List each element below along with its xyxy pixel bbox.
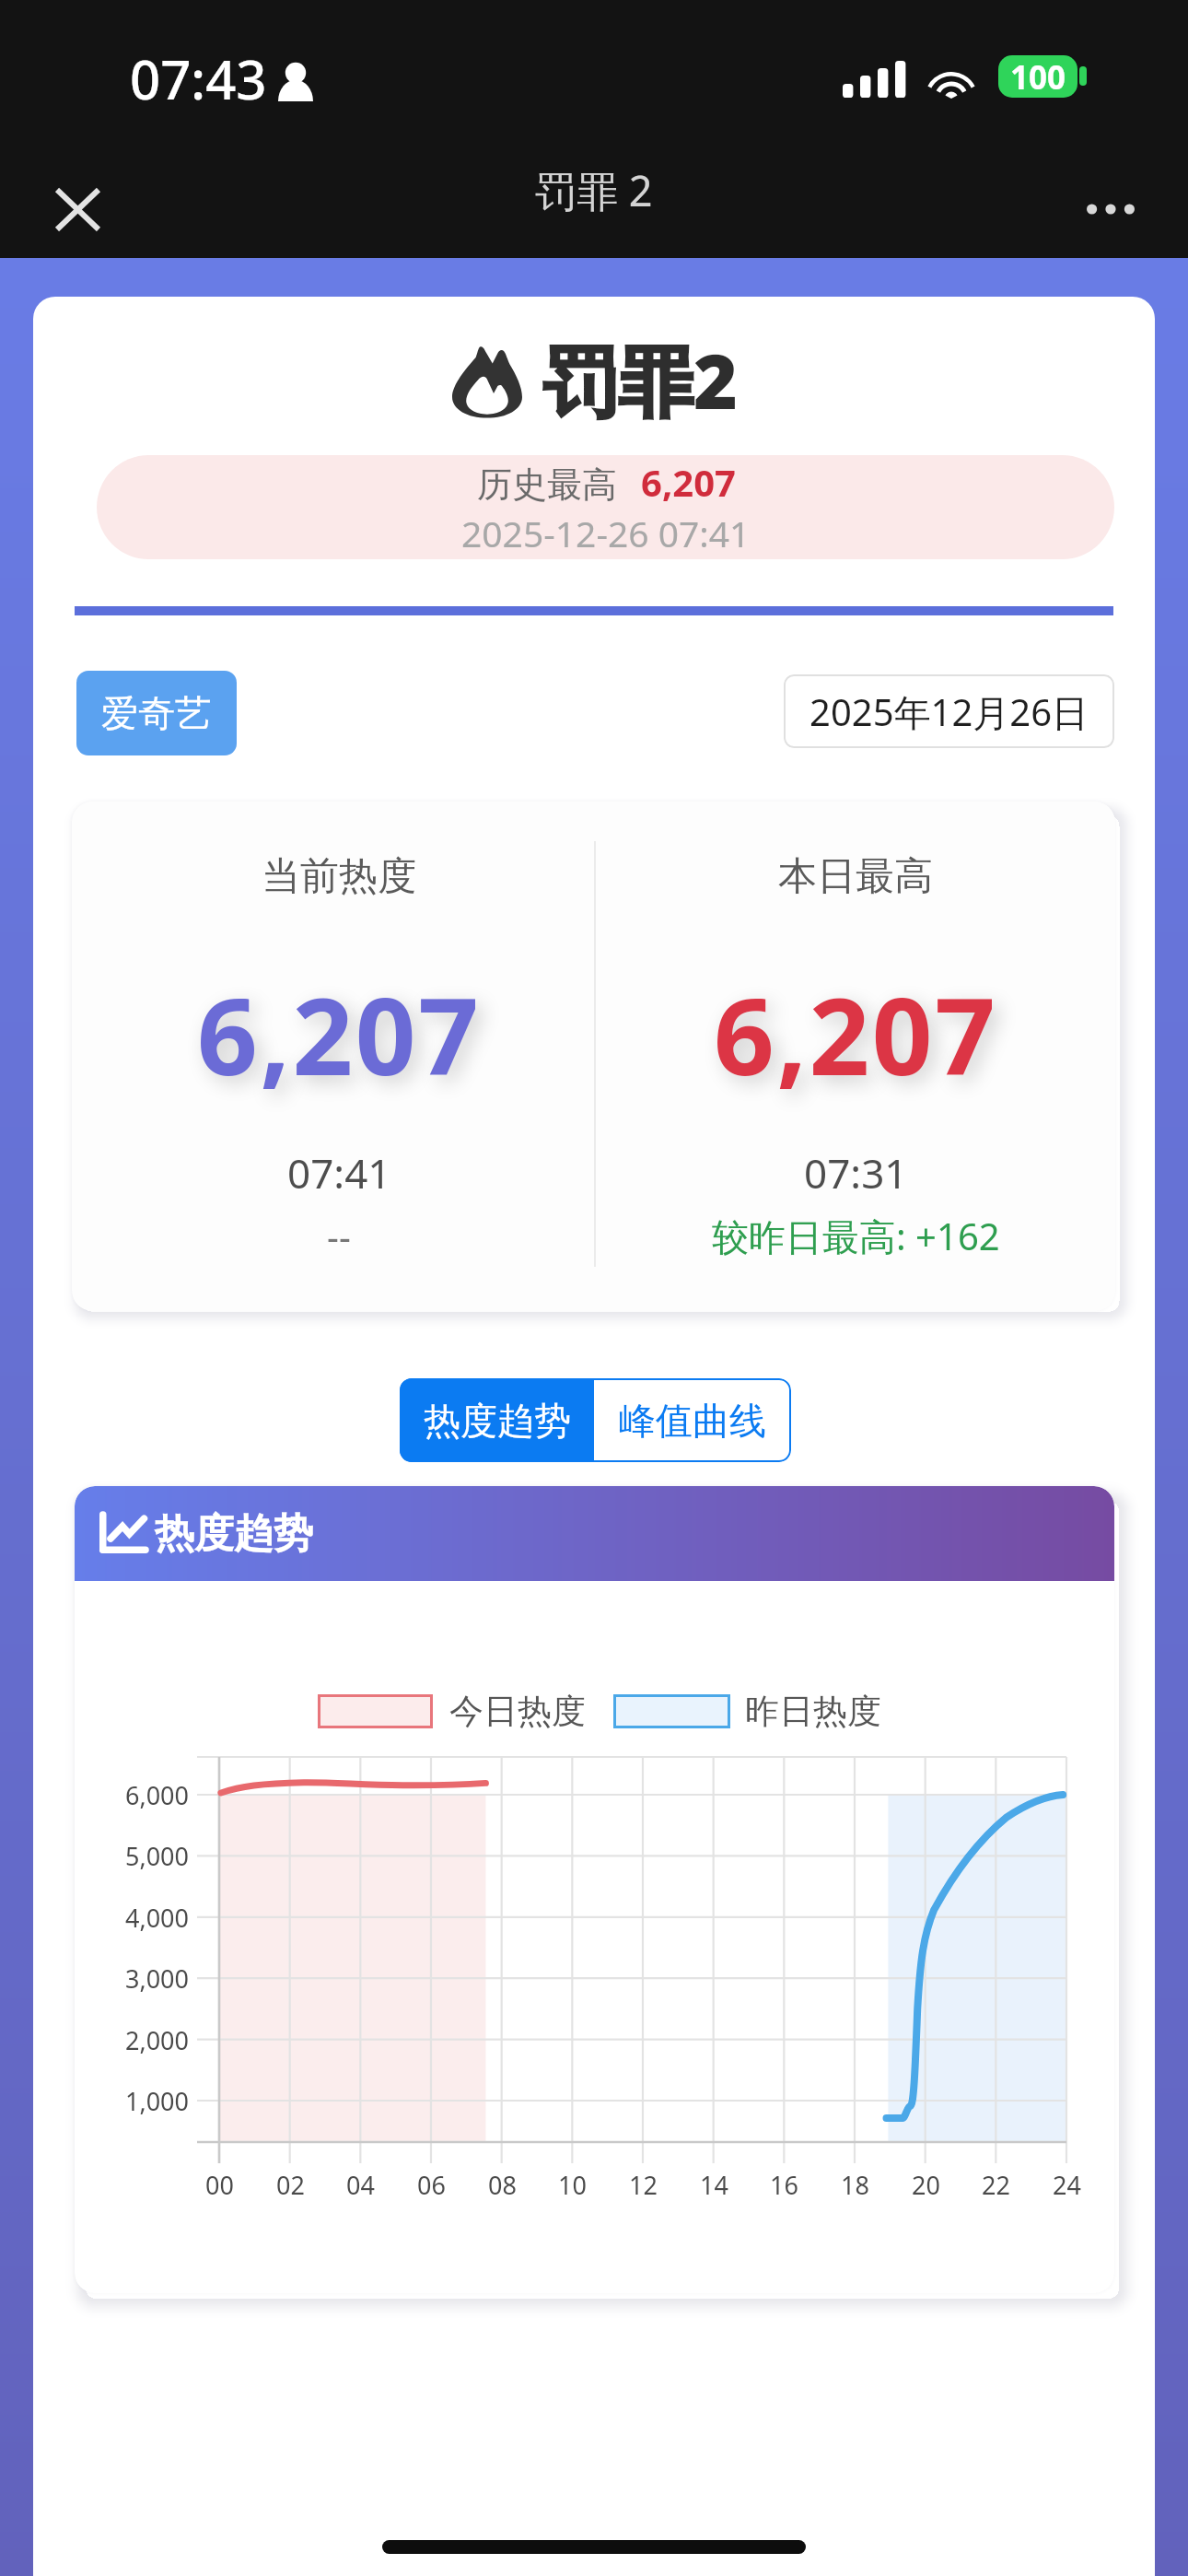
staticText: 02 [276,2168,305,2201]
staticText: 22 [982,2168,1010,2201]
staticText: 07:43 [130,42,267,115]
staticText: 2025-12-26 07:41 [461,509,751,557]
staticText: 2025年12月26日 [809,686,1089,737]
staticText: 10 [558,2168,587,2201]
staticText: 2,000 [124,2023,189,2056]
staticText: 3,000 [124,1961,189,1995]
button[interactable]: Close [36,168,119,251]
staticText: 14 [700,2168,728,2201]
staticText: 罚罪 2 [535,162,653,218]
staticText: 06 [417,2168,446,2201]
staticText: 6,207 [197,962,482,1107]
staticText: 6,207 [641,457,736,507]
staticText: 07:41 [287,1145,391,1200]
staticText: -- [327,1211,351,1260]
staticText: 6,207 [714,962,998,1107]
staticText: 6,000 [124,1778,189,1811]
staticText: 5,000 [124,1839,189,1872]
staticText: 昨日热度 [745,1690,881,1733]
staticText: 04 [346,2168,375,2201]
staticText: 07:31 [804,1145,908,1200]
staticText: 较昨日最高: +162 [712,1211,1000,1261]
staticText: 热度趋势 [424,1398,571,1444]
staticText: 当前热度 [262,852,416,901]
staticText: 罚罪2 [542,328,739,431]
button[interactable]: More options [1069,168,1152,251]
button[interactable]: 爱奇艺 [76,671,237,755]
staticText: 00 [205,2168,234,2201]
button[interactable]: 热度趋势 [400,1378,594,1462]
staticText: 12 [629,2168,658,2201]
staticText: 热度趋势 [155,1509,313,1559]
staticText: 今日热度 [449,1690,586,1733]
staticText: 20 [912,2168,940,2201]
staticText: 18 [841,2168,869,2201]
staticText: 100 [1010,55,1066,98]
staticText: 16 [770,2168,798,2201]
staticText: 历史最高 [477,463,617,507]
staticText: 1,000 [124,2084,189,2117]
staticText: 本日最高 [778,852,933,901]
staticText: 峰值曲线 [619,1398,766,1444]
staticText: 4,000 [124,1901,189,1934]
staticText: 爱奇艺 [101,690,212,736]
button[interactable]: 峰值曲线 [594,1378,791,1462]
staticText: 08 [488,2168,517,2201]
staticText: 24 [1053,2168,1081,2201]
button[interactable]: 2025年12月26日 [784,674,1114,748]
